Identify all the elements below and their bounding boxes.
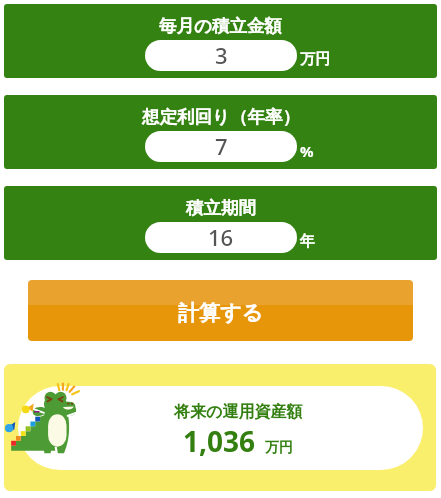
staticText: 毎月の積立金額 xyxy=(159,15,282,37)
staticText: 想定利回り（年率） xyxy=(142,106,300,128)
staticText: 3 xyxy=(215,40,228,70)
staticText: 計算する xyxy=(178,300,263,326)
staticText: 万円 xyxy=(265,439,293,457)
staticText: 1,036 xyxy=(183,422,256,460)
button[interactable]: 7 xyxy=(145,131,297,162)
button[interactable]: 積立期間 xyxy=(4,186,437,260)
button[interactable]: 毎月の積立金額 xyxy=(4,4,437,78)
staticText: % xyxy=(300,141,314,161)
staticText: 万円 xyxy=(300,50,330,69)
staticText: 積立期間 xyxy=(186,197,256,219)
button[interactable]: 3 xyxy=(145,40,297,71)
staticText: 7 xyxy=(215,131,228,161)
button[interactable]: 計算する xyxy=(28,280,413,341)
staticText: 年 xyxy=(300,232,315,251)
staticText: 16 xyxy=(208,222,234,252)
button[interactable]: 想定利回り（年率） xyxy=(4,95,437,169)
button[interactable]: 16 xyxy=(145,222,297,253)
staticText: 将来の運用資産額 xyxy=(174,402,303,422)
